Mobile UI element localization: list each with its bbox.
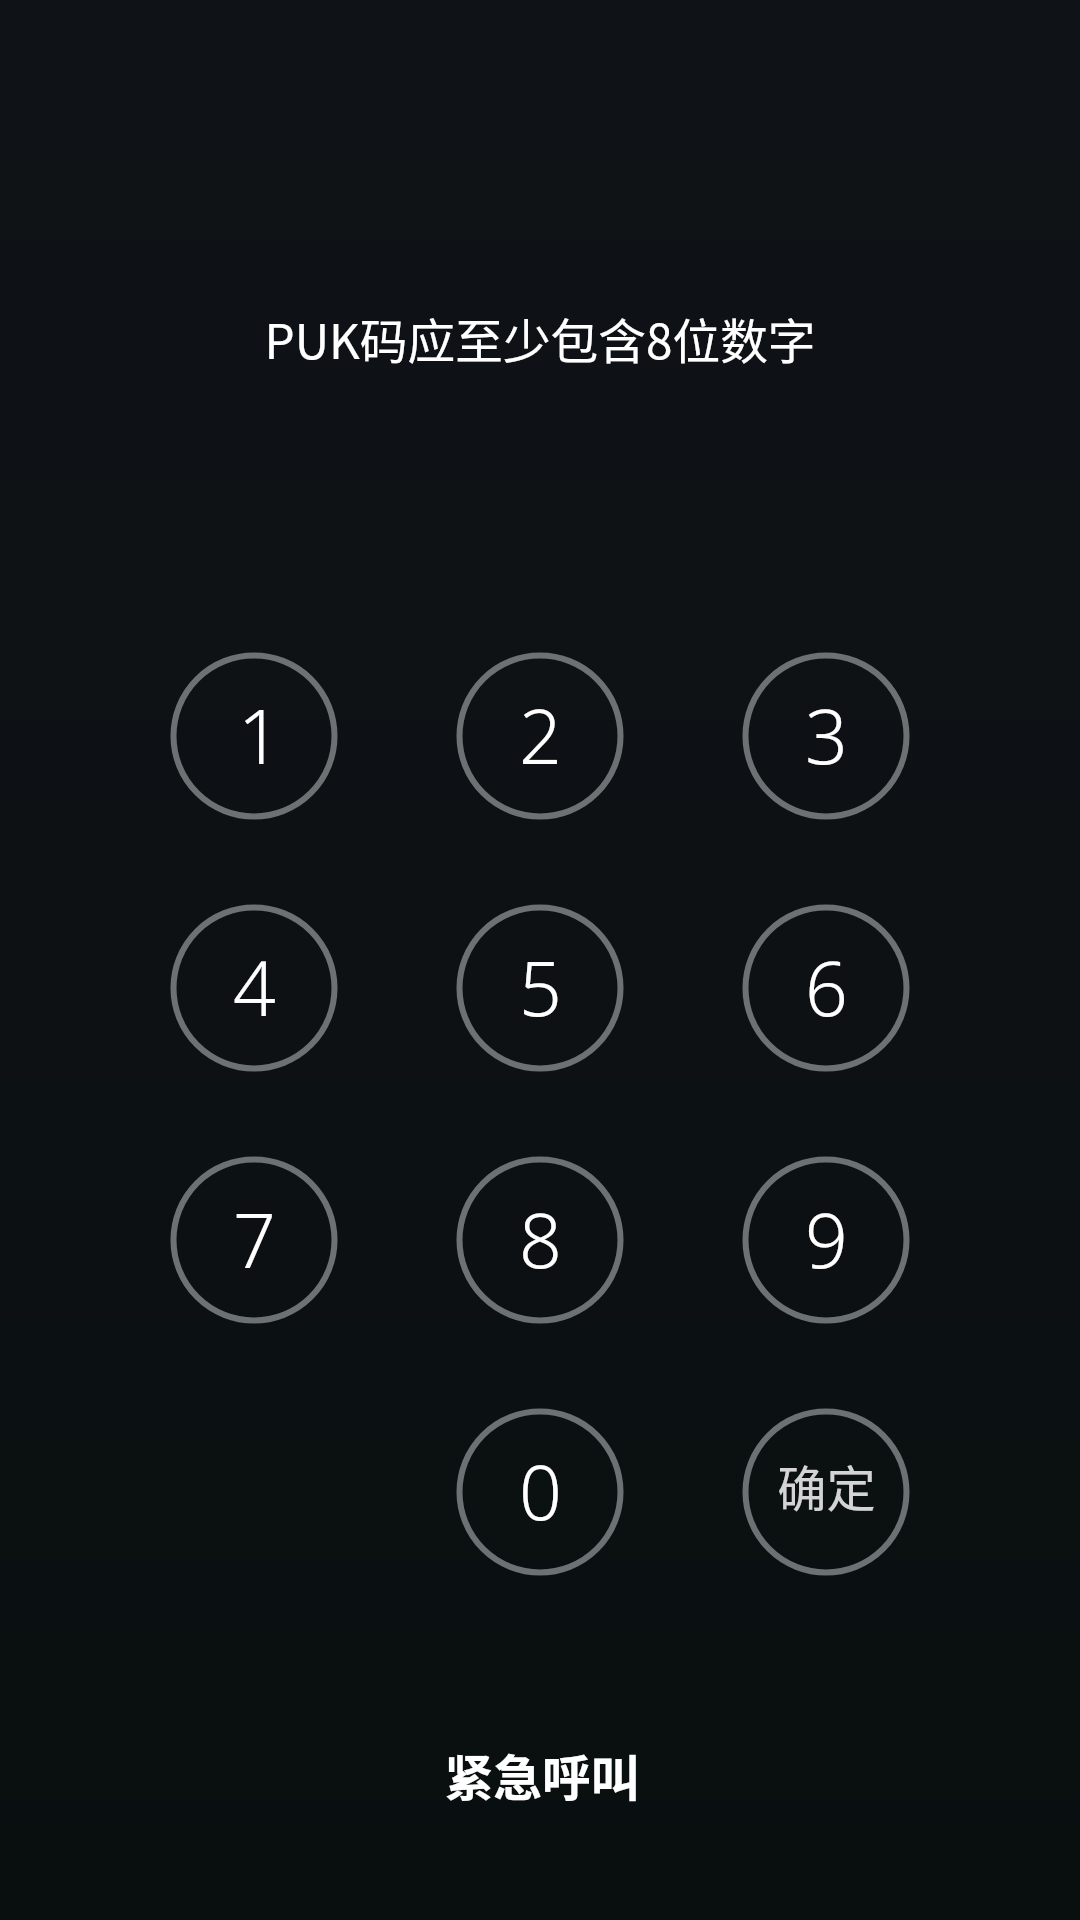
staticText: 3 xyxy=(805,684,848,786)
button[interactable]: Digit 7 xyxy=(167,1153,341,1327)
button[interactable]: Digit 8 xyxy=(453,1153,627,1327)
button[interactable]: 紧急呼叫 xyxy=(388,1715,696,1834)
staticText: 5 xyxy=(519,936,562,1038)
staticText: 4 xyxy=(233,936,276,1038)
staticText: 1 xyxy=(238,684,281,786)
staticText: 0 xyxy=(519,1440,562,1542)
staticText: 紧急呼叫 xyxy=(444,1739,640,1810)
button[interactable]: Digit 2 xyxy=(453,649,627,823)
staticText: 确定 xyxy=(777,1450,876,1521)
button[interactable]: Digit 3 xyxy=(739,649,913,823)
staticText: 8 xyxy=(519,1188,562,1290)
staticText: 7 xyxy=(233,1188,276,1290)
button[interactable]: Digit 5 xyxy=(453,901,627,1075)
button[interactable]: Digit 1 xyxy=(167,649,341,823)
staticText: 2 xyxy=(519,684,562,786)
button[interactable]: Digit 6 xyxy=(739,901,913,1075)
staticText: PUK码应至少包含8位数字 xyxy=(264,304,816,373)
staticText: 9 xyxy=(805,1188,848,1290)
button[interactable]: Confirm xyxy=(739,1405,913,1579)
button[interactable]: Digit 0 xyxy=(453,1405,627,1579)
button[interactable]: Digit 4 xyxy=(167,901,341,1075)
staticText: 6 xyxy=(805,936,848,1038)
button[interactable]: Digit 9 xyxy=(739,1153,913,1327)
